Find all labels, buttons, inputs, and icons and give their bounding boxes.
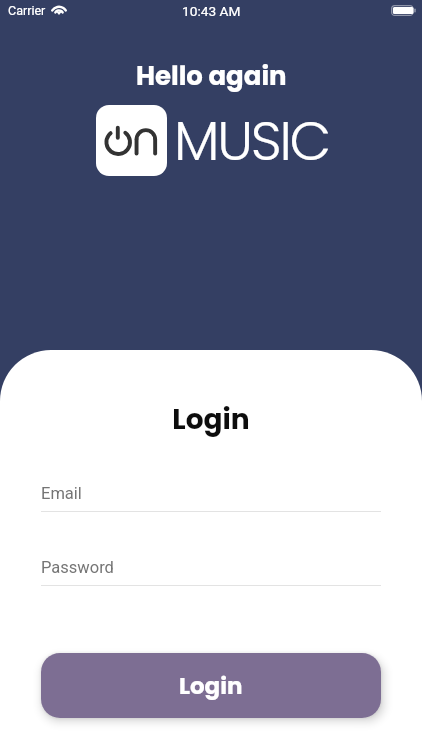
staticText: Email (41, 484, 82, 503)
other: on MUSIC logo (96, 105, 167, 176)
staticText: 10:43 AM (182, 3, 241, 19)
other: Battery full (391, 5, 416, 16)
staticText: Carrier (8, 3, 46, 18)
other: Wi-Fi (51, 3, 67, 15)
staticText: Password (41, 558, 114, 577)
button[interactable]: Login (41, 653, 381, 718)
staticText: Hello again (136, 58, 287, 94)
staticText: Login (179, 670, 243, 702)
button[interactable]: Password (41, 558, 381, 586)
button[interactable]: Email (41, 484, 381, 512)
staticText: Login (0, 400, 422, 439)
staticText: MUSIC (174, 103, 330, 179)
